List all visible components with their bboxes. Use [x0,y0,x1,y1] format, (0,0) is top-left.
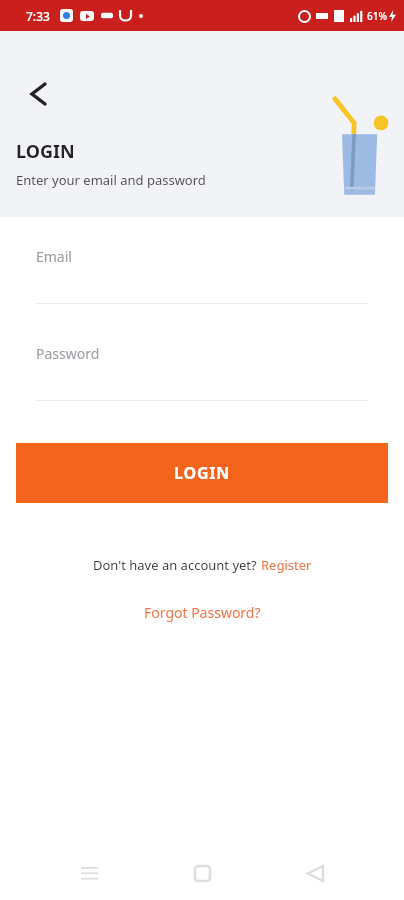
staticText: Email [36,247,72,266]
button[interactable]: Home [178,849,226,897]
button[interactable]: Password [20,344,384,401]
button[interactable]: Back [291,849,339,897]
button[interactable]: Email [20,247,384,304]
staticText: Forgot Password? [144,603,261,622]
staticText: 61% [367,9,387,23]
button[interactable]: Register [261,556,312,574]
staticText: LOGIN [16,139,75,164]
staticText: Register [261,556,312,574]
staticText: LOGIN [174,462,231,484]
staticText: Don't have an account yet? [93,556,261,574]
staticText: Enter your email and password [16,171,206,189]
staticText: Password [36,344,100,363]
button[interactable]: LOGIN [16,443,388,503]
button[interactable]: Back [20,76,56,112]
button[interactable]: Forgot Password? [138,601,267,624]
button[interactable]: Recent apps [65,849,113,897]
staticText: 7:33 [26,8,50,24]
